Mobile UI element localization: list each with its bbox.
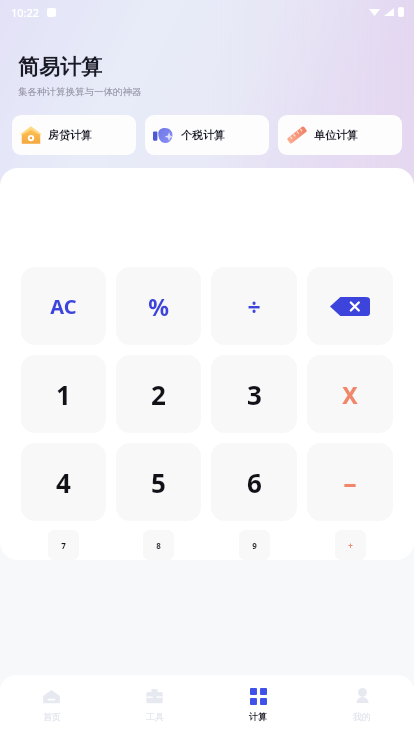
button[interactable]: – xyxy=(307,443,393,521)
button[interactable]: 计算 xyxy=(206,685,310,724)
staticText: ÷ xyxy=(247,291,261,322)
button[interactable]: Backspace xyxy=(307,267,393,345)
staticText: % xyxy=(148,291,169,322)
staticText: 单位计算 xyxy=(314,128,358,142)
staticText: 简易计算 xyxy=(18,54,102,80)
button[interactable]: + xyxy=(335,530,366,560)
staticText: + xyxy=(348,540,353,551)
button[interactable]: 5 xyxy=(116,443,201,521)
staticText: 1 xyxy=(56,377,71,412)
staticText: 工具 xyxy=(146,711,164,722)
button[interactable]: 6 xyxy=(211,443,297,521)
button[interactable]: ÷ xyxy=(211,267,297,345)
button[interactable]: 9 xyxy=(239,530,270,560)
button[interactable]: 单位计算 xyxy=(278,115,402,155)
staticText: AC xyxy=(50,293,77,320)
button[interactable]: 工具 xyxy=(103,685,206,724)
button[interactable]: X xyxy=(307,355,393,433)
staticText: 2 xyxy=(151,377,166,412)
staticText: 计算 xyxy=(249,711,267,722)
button[interactable]: AC xyxy=(21,267,106,345)
staticText: 6 xyxy=(247,465,262,500)
staticText: X xyxy=(342,379,358,410)
button[interactable]: 3 xyxy=(211,355,297,433)
staticText: 我的 xyxy=(353,711,371,722)
button[interactable]: 个税计算 xyxy=(145,115,269,155)
button[interactable]: 1 xyxy=(21,355,106,433)
staticText: 10:22 xyxy=(11,5,40,20)
staticText: 3 xyxy=(247,377,262,412)
staticText: – xyxy=(343,465,357,500)
button[interactable]: 房贷计算 xyxy=(12,115,136,155)
staticText: 5 xyxy=(151,465,166,500)
button[interactable]: % xyxy=(116,267,201,345)
staticText: 9 xyxy=(252,540,257,551)
staticText: 8 xyxy=(156,540,161,551)
button[interactable]: 7 xyxy=(48,530,79,560)
staticText: 4 xyxy=(56,465,71,500)
button[interactable]: 2 xyxy=(116,355,201,433)
button[interactable]: 4 xyxy=(21,443,106,521)
button[interactable]: 我的 xyxy=(310,685,414,724)
staticText: 个税计算 xyxy=(181,128,225,142)
staticText: 集各种计算换算与一体的神器 xyxy=(18,86,142,98)
button[interactable]: 8 xyxy=(143,530,174,560)
button[interactable]: 首页 xyxy=(0,685,103,724)
staticText: 7 xyxy=(61,540,66,551)
staticText: 首页 xyxy=(43,711,61,722)
staticText: 房贷计算 xyxy=(48,128,92,142)
